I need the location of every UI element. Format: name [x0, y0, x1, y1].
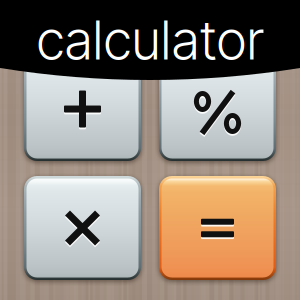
button[interactable]: Add: [24, 57, 141, 161]
staticText: calculator: [36, 8, 263, 72]
button[interactable]: Percent: [159, 57, 276, 161]
button[interactable]: Multiply: [24, 176, 141, 280]
button[interactable]: Equals: [159, 176, 276, 280]
